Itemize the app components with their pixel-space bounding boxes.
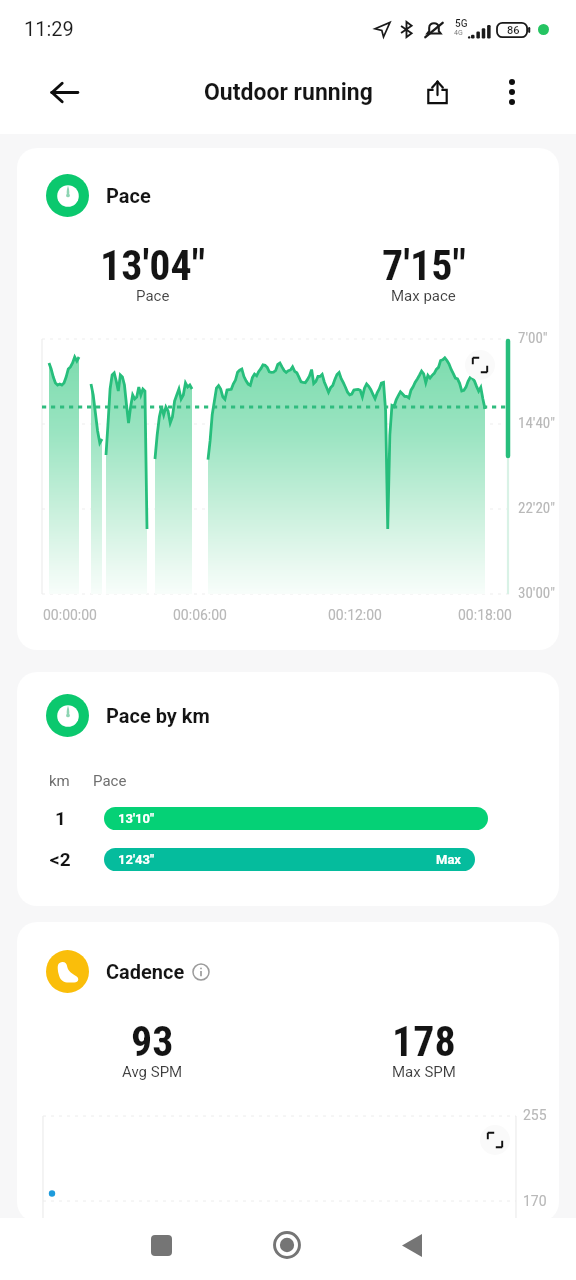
button[interactable]: Share (414, 69, 460, 115)
button[interactable]: Expand chart (480, 1125, 510, 1155)
staticText: 13'10" (118, 811, 155, 826)
staticText: Pace (106, 184, 151, 207)
staticText: Max pace (391, 287, 456, 305)
button[interactable]: Recents (133, 1217, 189, 1273)
button[interactable]: Back (384, 1217, 440, 1273)
staticText: 13'04" (100, 241, 206, 290)
button[interactable]: More options (489, 69, 535, 115)
staticText: km (49, 772, 70, 790)
staticText: 86 (507, 24, 520, 37)
staticText: 22'20" (518, 499, 556, 517)
staticText: Max (436, 852, 461, 867)
staticText: Avg SPM (122, 1063, 183, 1081)
staticText: Outdoor running (204, 79, 373, 106)
staticText: 00:18:00 (458, 607, 512, 623)
button[interactable]: Home (259, 1217, 315, 1273)
staticText: 7'00" (518, 329, 548, 347)
staticText: 4G (454, 29, 463, 37)
staticText: 30'00" (518, 584, 556, 602)
staticText: 7'15" (382, 241, 466, 290)
staticText: 11:29 (24, 17, 74, 40)
button[interactable]: Expand chart (465, 350, 495, 380)
staticText: 00:06:00 (173, 607, 227, 623)
button[interactable]: 13'10" (104, 807, 488, 830)
staticText: Cadence (106, 960, 185, 983)
staticText: 255 (523, 1107, 547, 1123)
staticText: 93 (131, 1017, 174, 1066)
staticText: 178 (392, 1017, 456, 1066)
staticText: 5G (455, 18, 468, 30)
button[interactable]: 12'43" (104, 848, 475, 871)
staticText: <2 (50, 848, 71, 870)
staticText: Pace by km (106, 704, 210, 727)
staticText: Pace (93, 772, 127, 790)
staticText: 12'43" (118, 852, 155, 867)
button[interactable]: Back (42, 70, 86, 114)
staticText: 170 (523, 1193, 547, 1209)
staticText: 1 (55, 807, 66, 829)
staticText: Pace (136, 287, 170, 305)
staticText: 00:00:00 (43, 607, 97, 623)
staticText: 00:12:00 (328, 607, 382, 623)
staticText: 14'40" (518, 414, 556, 432)
staticText: Max SPM (392, 1063, 456, 1081)
